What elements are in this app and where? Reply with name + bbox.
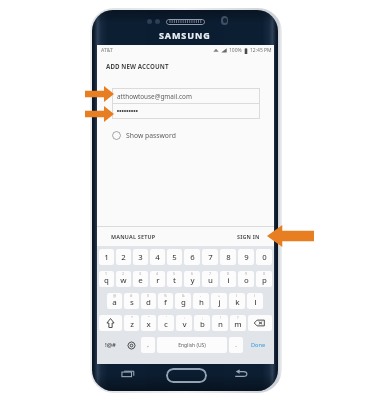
staticText: . [235,341,237,349]
button[interactable]: & [175,293,191,309]
button[interactable]: 3 [133,249,148,265]
button[interactable]: : [176,315,192,331]
button[interactable]: 4 [150,271,165,287]
staticText: 7 [209,271,212,276]
button[interactable]: MANUAL SETUP [111,233,156,240]
staticText: f [164,297,167,308]
button[interactable]: Backspace [248,315,272,331]
staticText: ; [202,315,203,320]
button[interactable]: ) [247,293,263,309]
button[interactable]: , [141,337,155,353]
staticText: & [182,293,185,298]
button[interactable]: ' [158,315,174,331]
button[interactable]: 5 [167,249,182,265]
staticText: 5 [173,271,176,276]
staticText: ? [237,315,239,320]
button[interactable]: $ [141,293,156,309]
staticText: 9 [244,252,249,263]
button[interactable]: # [124,293,139,309]
button[interactable]: ( [229,293,245,309]
button[interactable]: 7 [202,249,218,265]
staticText: c [164,319,168,330]
button[interactable]: 0 [256,249,272,265]
button[interactable]: Keyboard settings [123,334,140,356]
button[interactable]: % [158,293,173,309]
button[interactable]: Shift [99,315,122,331]
button[interactable]: 2 [116,271,131,287]
staticText: x [146,319,151,330]
button[interactable]: Back [233,368,249,380]
staticText: n [218,319,223,330]
staticText: @ [113,293,117,298]
staticText: : [184,315,185,320]
button[interactable]: " [141,315,156,331]
staticText: 9 [245,271,248,276]
button[interactable]: 9 [238,271,254,287]
staticText: AT&T [101,47,113,54]
staticText: y [190,275,195,286]
staticText: l [254,297,257,308]
staticText: j [218,297,221,308]
staticText: Done [251,341,266,349]
button[interactable]: Recents [120,368,136,380]
button[interactable]: 5 [167,271,182,287]
staticText: 8 [227,271,230,276]
button[interactable]: 6 [184,249,200,265]
button[interactable]: 0 [256,271,272,287]
button[interactable]: ; [194,315,210,331]
button[interactable]: 1 [99,271,114,287]
staticText: a [112,297,117,308]
button[interactable]: atthowtouse@gmail.com [112,88,260,104]
staticText: 2 [121,252,126,263]
staticText: g [181,297,186,308]
staticText: ( [236,293,238,298]
staticText: 6 [191,271,194,276]
button[interactable]: + [211,293,227,309]
staticText: ! [220,315,221,320]
staticText: ADD NEW ACCOUNT [106,62,169,70]
button[interactable]: 9 [238,249,254,265]
button[interactable]: Home [166,368,207,383]
staticText: e [138,275,143,286]
staticText: u [208,275,213,286]
staticText: 1 [104,252,109,263]
button[interactable]: SIGN IN [237,233,260,240]
staticText: d [146,297,151,308]
button[interactable]: English (US) [157,337,227,353]
staticText: k [235,297,240,308]
button[interactable]: . [229,337,243,353]
button[interactable]: 7 [202,271,218,287]
staticText: 0 [262,252,267,263]
staticText: 0 [263,271,266,276]
button[interactable]: 2 [116,249,131,265]
button[interactable]: 1 [99,249,114,265]
button[interactable]: !@# [98,334,123,356]
button[interactable]: ! [212,315,228,331]
button[interactable] [112,103,260,119]
button[interactable]: Show password [112,128,176,143]
button[interactable]: 8 [220,249,236,265]
button[interactable]: 8 [220,271,236,287]
button[interactable]: @ [107,293,122,309]
staticText: Show password [126,131,176,140]
button[interactable]: * [124,315,139,331]
staticText: o [244,275,249,286]
button[interactable]: 6 [184,271,200,287]
button[interactable]: ? [230,315,246,331]
button[interactable]: - [193,293,209,309]
button[interactable]: 4 [150,249,165,265]
button[interactable]: Done [244,334,273,356]
staticText: 3 [138,252,143,263]
staticText: SIGN IN [237,233,260,240]
staticText: ' [166,315,167,320]
staticText: 3 [139,271,142,276]
staticText: 7 [208,252,213,263]
staticText: 8 [226,252,231,263]
button[interactable]: 3 [133,271,148,287]
staticText: - [200,293,202,298]
staticText: # [130,293,133,298]
staticText: 4 [155,252,160,263]
staticText: z [130,319,134,330]
staticText: MANUAL SETUP [111,233,156,240]
staticText: s [130,297,134,308]
